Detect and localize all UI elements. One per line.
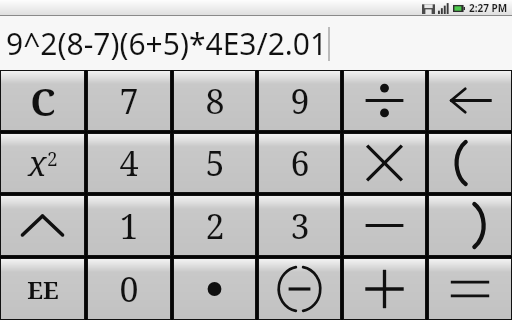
button[interactable]: 8 (174, 71, 255, 130)
staticText: 3 (290, 203, 310, 249)
staticText: C (30, 75, 56, 127)
staticText: 2:27 PM (469, 1, 508, 15)
button[interactable]: 7 (88, 71, 170, 130)
button[interactable]: 4 (88, 134, 170, 192)
button[interactable]: Multiply (344, 134, 425, 192)
button[interactable]: 5 (174, 134, 255, 192)
button[interactable]: Equals (429, 259, 511, 319)
staticText: x (28, 140, 47, 186)
button[interactable]: Minus (344, 196, 425, 255)
staticText: 5 (205, 140, 225, 186)
button[interactable]: 2 (174, 196, 255, 255)
button[interactable]: Square (1, 134, 84, 192)
button[interactable]: Divide (344, 71, 425, 130)
button[interactable]: Close parenthesis (429, 196, 511, 255)
staticText: 4 (119, 140, 139, 186)
button[interactable]: Plus (344, 259, 425, 319)
button[interactable]: 0 (88, 259, 170, 319)
staticText: 9 (290, 78, 310, 124)
button[interactable]: EE (1, 259, 84, 319)
staticText: EE (27, 273, 59, 306)
staticText: 6 (290, 140, 310, 186)
button[interactable]: 9 (259, 71, 340, 130)
button[interactable]: C (1, 71, 84, 130)
button[interactable]: 1 (88, 196, 170, 255)
staticText: 0 (119, 266, 139, 312)
button[interactable]: 9^2(8-7)(6+5)*4E3/2.01 (0, 16, 512, 70)
staticText: 1 (119, 203, 139, 249)
button[interactable]: 6 (259, 134, 340, 192)
button[interactable]: Negate (259, 259, 340, 319)
staticText: 7 (119, 78, 139, 124)
button[interactable]: Backspace (429, 71, 511, 130)
staticText: 9^2(8-7)(6+5)*4E3/2.01 (6, 23, 328, 64)
button[interactable]: Power (1, 196, 84, 255)
staticText: 2 (205, 203, 225, 249)
button[interactable]: 3 (259, 196, 340, 255)
button[interactable]: Open parenthesis (429, 134, 511, 192)
staticText: 8 (205, 78, 225, 124)
button[interactable]: Decimal point (174, 259, 255, 319)
staticText: 2 (47, 146, 58, 172)
